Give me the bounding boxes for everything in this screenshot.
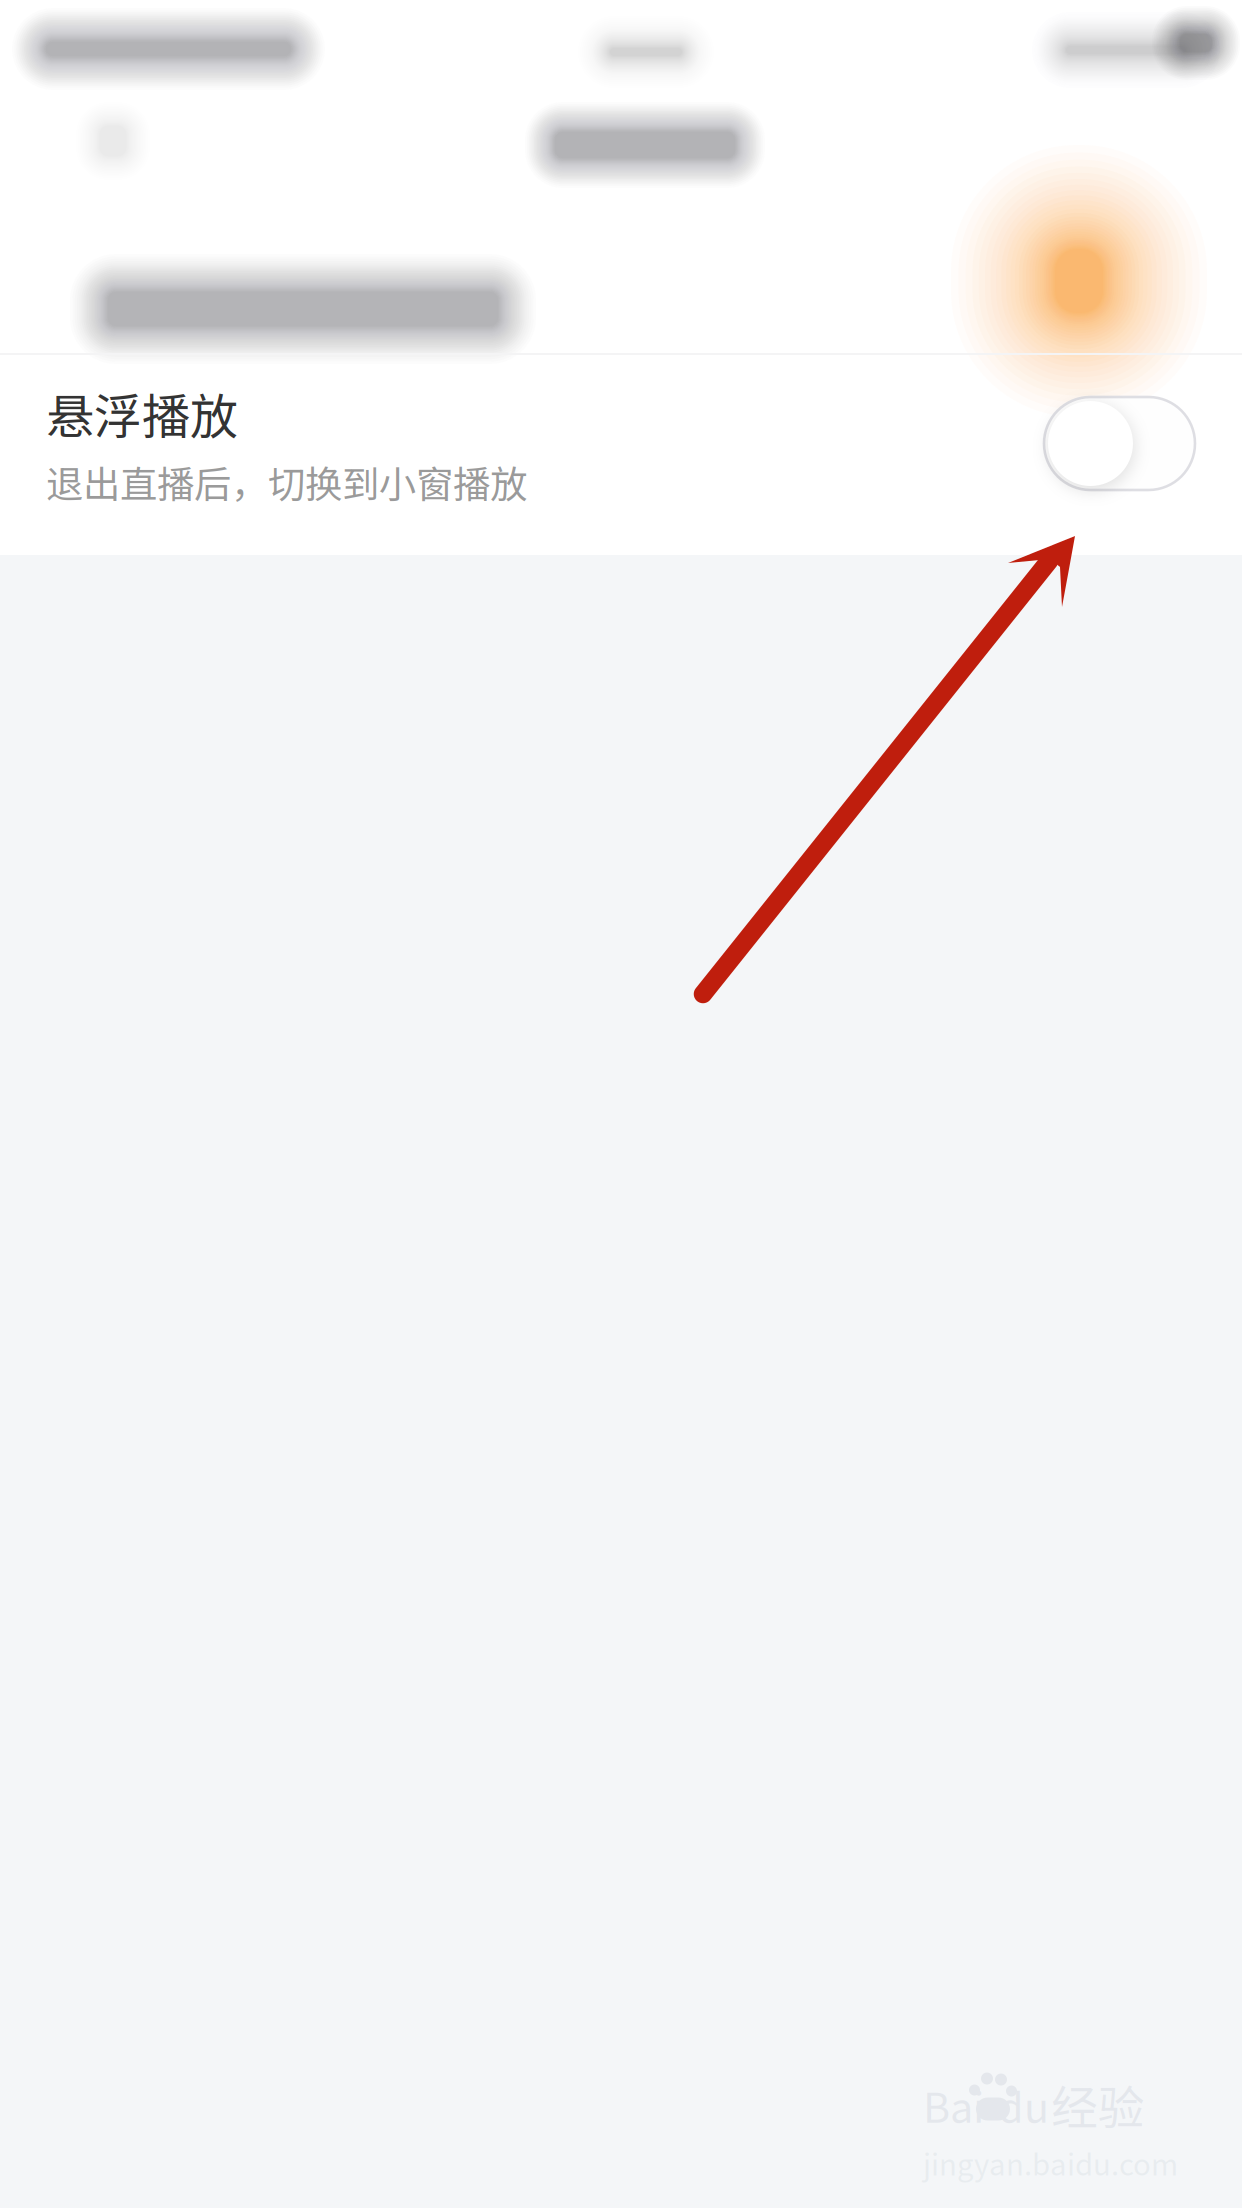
staticText: 退出直播后，切换到小窗播放 — [46, 455, 527, 509]
staticText: 经验 — [1051, 2071, 1145, 2139]
staticText: jingyan.baidu.com — [923, 2141, 1178, 2184]
button[interactable]: 悬浮播放开关 — [1044, 397, 1195, 490]
button[interactable]: 悬浮播放 — [0, 345, 1242, 542]
staticText: du — [998, 2075, 1049, 2135]
staticText: 悬浮播放 — [46, 378, 238, 448]
staticText: Bai — [923, 2075, 984, 2135]
